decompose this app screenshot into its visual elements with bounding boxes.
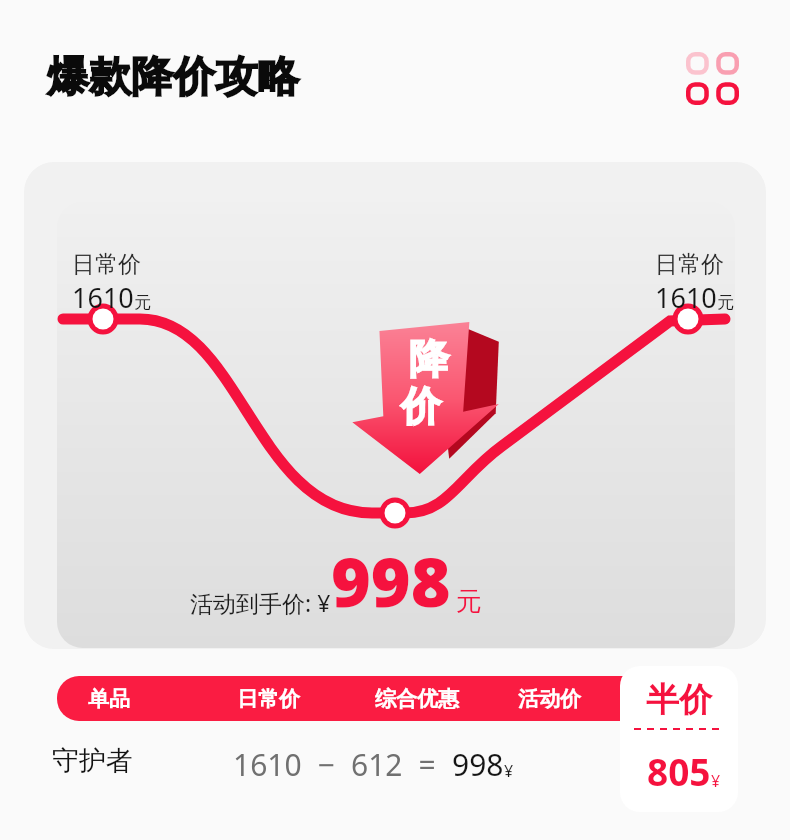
staticText: 半价: [646, 679, 712, 721]
staticText: 元: [134, 292, 151, 313]
staticText: 日常价: [237, 686, 300, 712]
staticText: ¥: [711, 770, 721, 792]
button[interactable]: 活动价: [518, 676, 608, 721]
staticText: 998: [452, 744, 504, 785]
staticText: ¥: [504, 760, 514, 782]
staticText: 998: [331, 534, 451, 627]
staticText: 爆款降价攻略: [47, 51, 299, 104]
button[interactable]: 日常价: [237, 676, 327, 721]
staticText: 1610: [233, 744, 302, 785]
staticText: 单品: [88, 686, 130, 712]
button[interactable]: Categories: [686, 52, 739, 105]
button[interactable]: 单品: [88, 676, 178, 721]
staticText: 日常价: [72, 250, 141, 279]
button[interactable]: 综合优惠: [375, 676, 465, 721]
staticText: −: [302, 744, 351, 785]
staticText: 元: [717, 292, 734, 313]
button[interactable]: 半价: [620, 666, 738, 812]
staticText: 日常价: [655, 250, 724, 279]
staticText: 降: [409, 334, 449, 384]
staticText: 1610: [72, 279, 134, 316]
staticText: 活动到手价: ¥: [190, 587, 331, 618]
staticText: 综合优惠: [375, 686, 459, 712]
button[interactable]: 单品: [57, 676, 660, 721]
staticText: 1610: [655, 279, 717, 316]
staticText: 元: [456, 585, 482, 618]
staticText: 价: [401, 381, 441, 431]
staticText: 守护者: [52, 744, 133, 778]
staticText: 805: [647, 746, 711, 796]
staticText: 活动价: [518, 686, 581, 712]
staticText: =: [403, 744, 452, 785]
staticText: 612: [351, 744, 403, 785]
